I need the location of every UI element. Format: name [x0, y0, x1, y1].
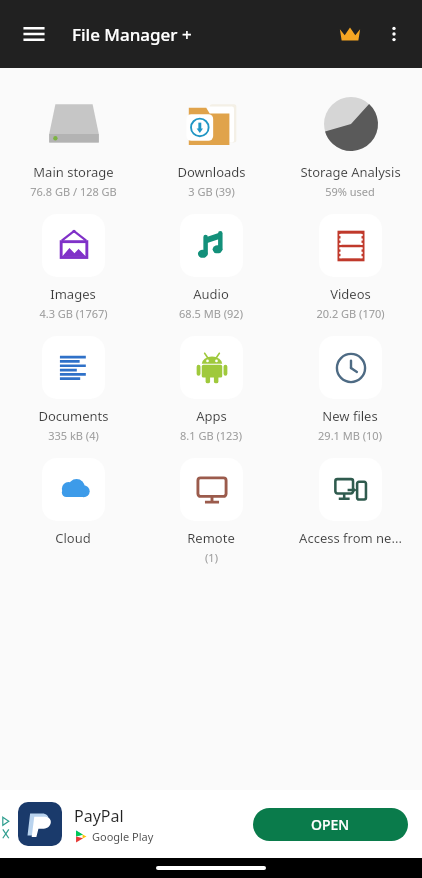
staticText: Audio — [193, 285, 229, 303]
staticText: Remote — [187, 529, 235, 547]
button[interactable]: Premium — [330, 14, 370, 54]
button[interactable]: Storage Analysis — [284, 86, 416, 208]
button[interactable]: More options — [374, 14, 414, 54]
button[interactable]: Downloads — [145, 86, 277, 208]
staticText: Documents — [38, 407, 109, 425]
button[interactable]: Images — [7, 208, 139, 330]
button[interactable]: Apps — [145, 330, 277, 452]
staticText: Apps — [196, 407, 227, 425]
staticText: Access from ne... — [299, 529, 402, 547]
staticText: (1) — [205, 550, 218, 565]
button[interactable]: Documents — [7, 330, 139, 452]
staticText: Main storage — [33, 163, 114, 181]
staticText: 4.3 GB (1767) — [39, 306, 108, 321]
staticText: File Manager + — [72, 23, 192, 46]
button[interactable]: Cloud — [7, 452, 139, 574]
button[interactable]: OPEN — [253, 808, 408, 841]
staticText: 59% used — [325, 184, 375, 199]
button[interactable]: Access from ne... — [284, 452, 416, 574]
staticText: Videos — [330, 285, 371, 303]
staticText: 8.1 GB (123) — [180, 428, 242, 443]
button[interactable]: Audio — [145, 208, 277, 330]
staticText: New files — [322, 407, 378, 425]
button[interactable]: Main storage — [7, 86, 139, 208]
staticText: 29.1 MB (10) — [318, 428, 382, 443]
staticText: Storage Analysis — [300, 163, 401, 181]
staticText: Cloud — [55, 529, 91, 547]
staticText: Images — [50, 285, 96, 303]
staticText: 3 GB (39) — [188, 184, 235, 199]
staticText: 335 kB (4) — [48, 428, 99, 443]
button[interactable]: PayPal — [0, 790, 422, 858]
staticText: PayPal — [74, 805, 124, 827]
staticText: Google Play — [92, 829, 154, 844]
button[interactable]: New files — [284, 330, 416, 452]
button[interactable]: Open navigation menu — [12, 12, 56, 56]
staticText: OPEN — [311, 815, 350, 834]
button[interactable]: Remote — [145, 452, 277, 574]
staticText: 68.5 MB (92) — [179, 306, 243, 321]
staticText: 20.2 GB (170) — [316, 306, 385, 321]
button[interactable]: Videos — [284, 208, 416, 330]
staticText: 76.8 GB / 128 GB — [30, 184, 117, 199]
staticText: Downloads — [177, 163, 246, 181]
